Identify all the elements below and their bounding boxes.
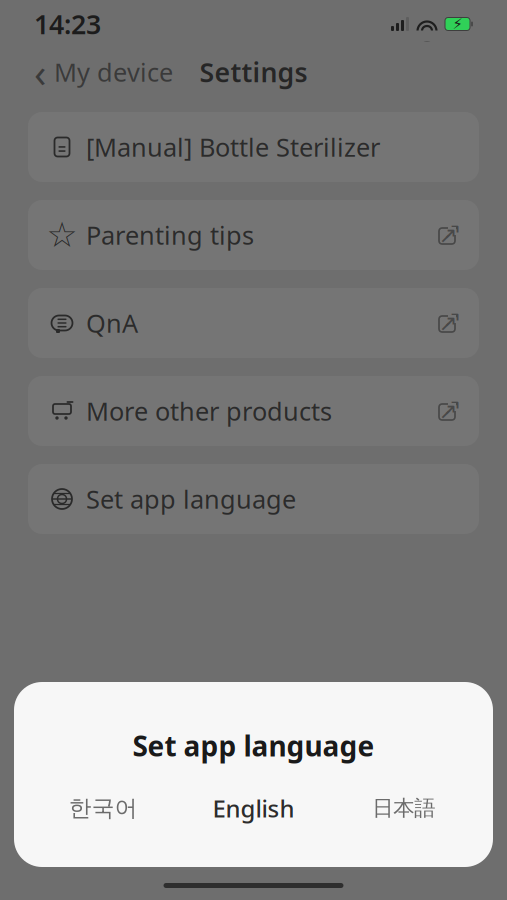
staticText: ↗ (438, 222, 457, 248)
button[interactable]: QnA (28, 288, 479, 358)
staticText: English (212, 792, 294, 824)
staticText: Parenting tips (86, 218, 254, 252)
staticText: Settings (199, 54, 307, 90)
staticText: 日本語 (372, 795, 435, 821)
button[interactable]: [Manual] Bottle Sterilizer (28, 112, 479, 182)
staticText: ↗ (438, 398, 457, 424)
staticText: ☆ (46, 215, 77, 255)
staticText: ↗ (442, 306, 461, 332)
staticText: ↗ (442, 394, 461, 420)
staticText: My device (54, 55, 173, 89)
staticText: [Manual] Bottle Sterilizer (86, 130, 380, 164)
button[interactable]: Set app language (28, 464, 479, 534)
staticText: Set app language (86, 482, 296, 516)
button[interactable]: More other products (28, 376, 479, 446)
staticText: More other products (86, 394, 332, 428)
staticText: QnA (86, 306, 138, 340)
button[interactable]: ‹ (26, 50, 181, 94)
button[interactable]: ☆ (28, 200, 479, 270)
staticText: ⚡︎ (452, 16, 462, 32)
staticText: ↗ (438, 310, 457, 336)
staticText: ‹ (34, 45, 46, 98)
staticText: 한국어 (69, 794, 138, 822)
staticText: 14:23 (34, 6, 101, 42)
button[interactable]: 日本語 (329, 786, 479, 830)
staticText: ↗ (442, 218, 461, 244)
button[interactable]: 한국어 (28, 786, 178, 830)
staticText: Set app language (132, 727, 374, 764)
button[interactable]: English (178, 786, 329, 830)
